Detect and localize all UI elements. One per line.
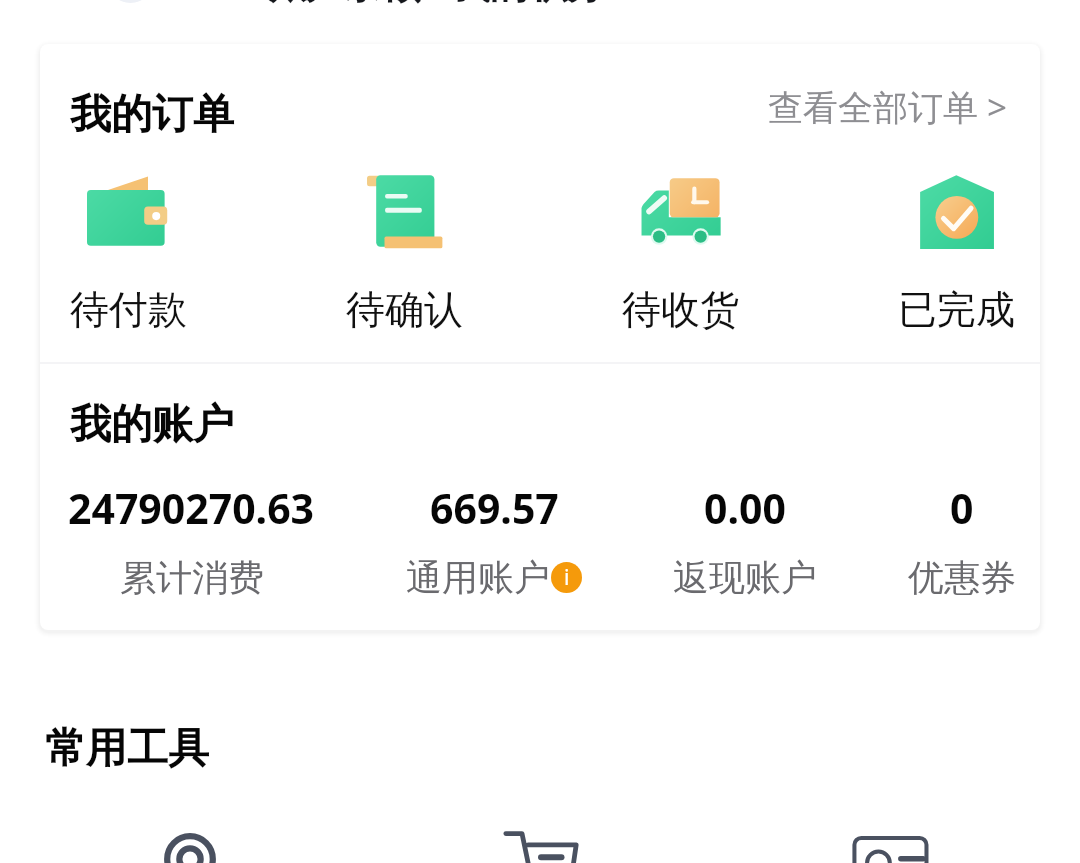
staticText: 通用账户 <box>406 555 550 600</box>
staticText: 0.00 <box>704 480 786 536</box>
staticText: 累计消费 <box>120 555 264 600</box>
button[interactable]: 669.57 <box>406 480 582 600</box>
button[interactable]: 待付款 <box>70 172 187 334</box>
button[interactable]: 已完成 <box>898 172 1015 334</box>
staticText: 待收货 <box>622 285 739 334</box>
staticText: 已完成 <box>898 285 1015 334</box>
staticText: 返现账户 <box>673 555 817 600</box>
staticText: 0 <box>950 480 974 536</box>
button[interactable]: 签到 <box>152 821 228 863</box>
staticText: 账户余额 - 我的积分 <box>268 0 604 9</box>
staticText: 优惠券 <box>908 555 1016 600</box>
staticText: 我的账户 <box>70 399 234 451</box>
staticText: 我的订单 <box>70 89 234 141</box>
button[interactable]: 购物车 <box>503 832 579 863</box>
button[interactable]: 查看全部订单 > <box>768 83 1008 131</box>
staticText: 24790270.63 <box>68 480 315 536</box>
staticText: 待确认 <box>346 285 463 334</box>
button[interactable]: 会员卡 <box>852 832 928 863</box>
button[interactable]: 待确认 <box>346 172 463 334</box>
button[interactable]: 24790270.63 <box>68 480 315 600</box>
staticText: 669.57 <box>430 480 559 536</box>
staticText: 查看全部订单 > <box>768 83 1008 131</box>
staticText: 常用工具 <box>45 723 209 775</box>
button[interactable]: 账户余额 - 我的积分 <box>268 0 604 9</box>
button[interactable]: 头像 <box>108 0 153 3</box>
staticText: 待付款 <box>70 285 187 334</box>
button[interactable]: 待收货 <box>622 172 739 334</box>
staticText: i <box>564 563 570 592</box>
button[interactable]: 0.00 <box>673 480 817 600</box>
button[interactable]: 0 <box>908 480 1016 600</box>
